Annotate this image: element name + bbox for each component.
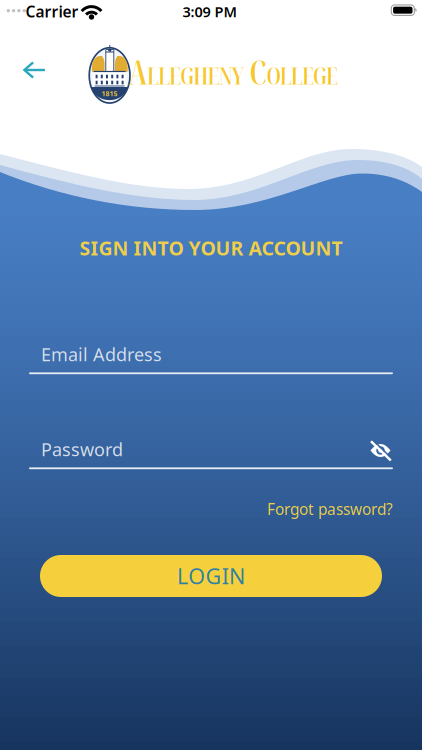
button[interactable]: Email Address — [29, 337, 393, 381]
staticText: Forgot password? — [267, 498, 393, 519]
staticText: C — [250, 50, 267, 94]
staticText: Email Address — [41, 342, 162, 366]
staticText: LLEGHENY — [147, 60, 245, 91]
staticText: LOGIN — [177, 561, 245, 591]
button[interactable]: Forgot password? — [29, 495, 393, 523]
button[interactable]: Password — [29, 432, 393, 476]
staticText: A — [128, 50, 147, 94]
button[interactable] — [13, 52, 57, 88]
button[interactable] — [365, 436, 395, 464]
staticText: 3:09 PM — [182, 2, 236, 21]
staticText: 1815 — [102, 89, 118, 98]
staticText: SIGN INTO YOUR ACCOUNT — [79, 235, 342, 261]
staticText: OLLEGE — [267, 60, 338, 91]
staticText: Password — [41, 437, 123, 461]
staticText: Carrier — [25, 1, 78, 22]
button[interactable]: LOGIN — [40, 555, 382, 597]
